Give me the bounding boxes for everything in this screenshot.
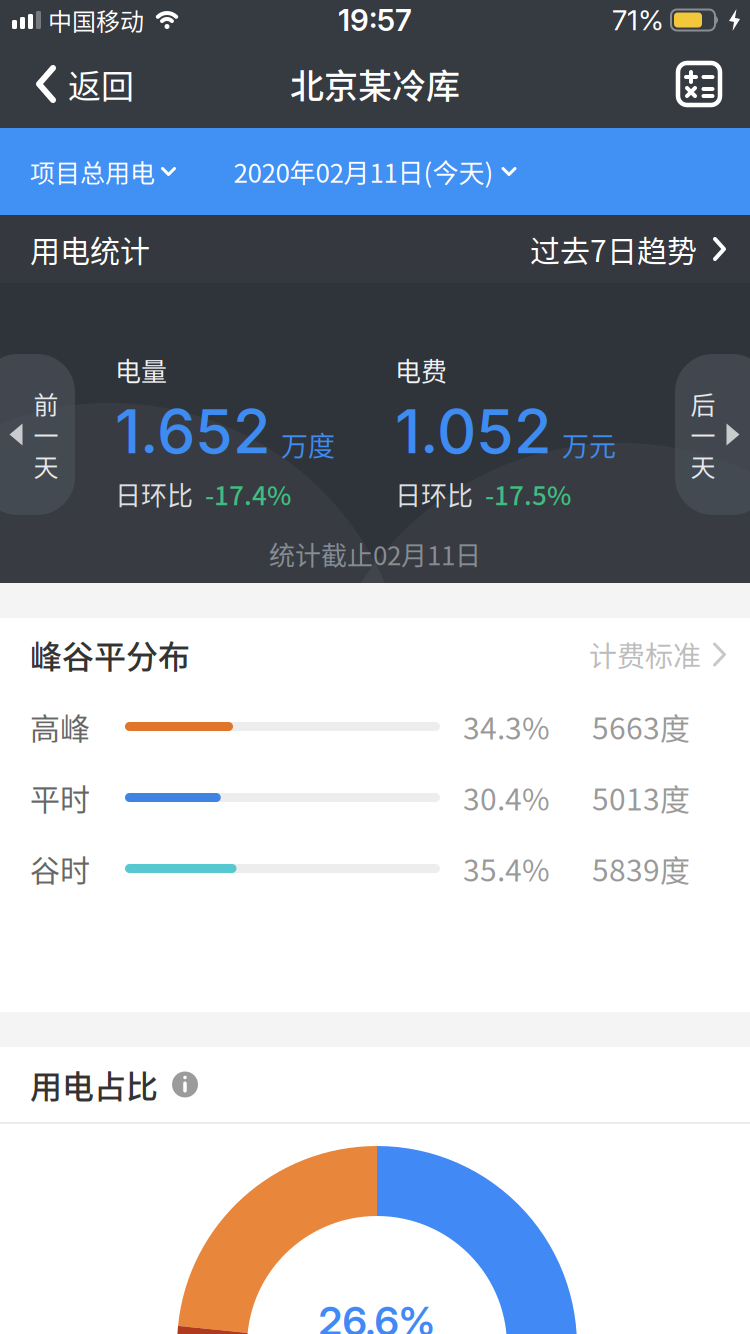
staticText: 1.652 [115,394,271,468]
staticText: 电费 [395,351,447,389]
staticText: -17.5% [485,475,571,513]
staticText: 一 [690,416,715,453]
button[interactable]: 说明 [172,1071,198,1097]
staticText: 计费标准 [589,634,701,675]
staticText: 5013度 [592,776,690,819]
staticText: 天 [690,447,715,484]
staticText: 平时 [30,776,90,819]
staticText: 用电统计 [30,227,150,271]
button[interactable]: 返回 [36,60,134,108]
staticText: 峰谷平分布 [30,631,190,678]
staticText: 项目总用电 [30,153,155,190]
staticText: 后 [690,385,715,422]
button[interactable]: 2020年02月11日(今天) [233,153,516,190]
staticText: 万度 [281,425,335,464]
staticText: 过去7日趋势 [530,227,697,271]
staticText: 日环比 [115,475,193,513]
button[interactable]: 后一天 [675,354,750,515]
button[interactable]: 前一天 [0,354,75,515]
staticText: 19:57 [338,2,412,38]
staticText: 中国移动 [48,3,144,37]
staticText: 北京某冷库 [290,59,460,109]
staticText: 天 [33,447,58,484]
staticText: 统计截止02月11日 [269,535,481,573]
button[interactable]: 项目总用电 [30,153,176,190]
staticText: 高峰 [30,705,90,748]
staticText: 用电占比 [30,1061,158,1108]
staticText: 日环比 [395,475,473,513]
staticText: 电量 [115,351,167,389]
staticText: 1.052 [395,394,552,468]
staticText: 35.4% [463,847,550,890]
staticText: 返回 [68,60,134,108]
staticText: 26.6% [318,1297,435,1334]
staticText: 万元 [562,425,616,464]
staticText: 5663度 [592,705,690,748]
staticText: -17.4% [205,475,291,513]
staticText: 71% [612,3,664,37]
staticText: 34.3% [463,705,550,748]
button[interactable]: 计费标准 [589,634,726,675]
staticText: 前 [33,385,58,422]
staticText: 谷时 [30,847,90,890]
staticText: 5839度 [592,847,690,890]
button[interactable]: 过去7日趋势 [530,227,726,271]
staticText: 一 [33,416,58,453]
staticText: 2020年02月11日(今天) [233,153,493,190]
staticText: 30.4% [463,776,550,819]
button[interactable]: 计算器 [676,61,722,107]
